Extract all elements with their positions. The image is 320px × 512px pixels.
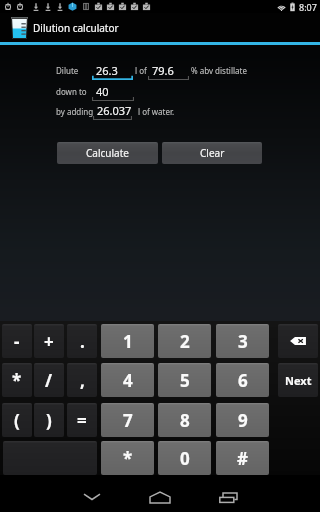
staticText: Next (285, 373, 312, 388)
button[interactable]: 26.037 (93, 103, 132, 120)
staticText: 8 (180, 409, 190, 432)
staticText: 9 (238, 409, 248, 432)
staticText: 8:07 (299, 1, 317, 13)
staticText: 79.6 (152, 63, 174, 78)
staticText: + (44, 330, 54, 353)
staticText: Dilute (56, 65, 79, 76)
staticText: * (12, 369, 22, 392)
staticText: Calculate (86, 146, 129, 160)
button[interactable]: Backspace (278, 324, 318, 358)
button[interactable]: Clear (162, 142, 262, 164)
button[interactable]: - (2, 324, 32, 358)
staticText: , (80, 369, 85, 392)
button[interactable]: Hide keyboard (64, 482, 120, 512)
staticText: 3 (238, 330, 248, 353)
staticText: 4 (123, 369, 133, 392)
staticText: 2 (180, 330, 190, 353)
staticText: l of (135, 65, 147, 76)
button[interactable]: / (34, 363, 64, 397)
button[interactable]: ) (34, 403, 64, 437)
staticText: down to (56, 86, 87, 97)
staticText: 26.3 (96, 63, 118, 78)
button[interactable]: 6 (216, 363, 269, 397)
button[interactable]: Next (278, 363, 318, 397)
staticText: 0 (180, 447, 190, 470)
staticText: by adding (56, 106, 94, 117)
button[interactable]: * (101, 441, 154, 475)
staticText: # (237, 447, 248, 470)
staticText: ( (14, 409, 20, 432)
button[interactable]: 79.6 (148, 63, 189, 80)
button[interactable]: 40 (92, 84, 134, 101)
button[interactable]: 26.3 (92, 63, 133, 80)
button[interactable]: 3 (216, 324, 269, 358)
staticText: 5 (180, 369, 190, 392)
staticText: 26.037 (97, 103, 132, 118)
button[interactable]: # (216, 441, 269, 475)
button[interactable]: 8 (158, 403, 211, 437)
button[interactable]: 4 (101, 363, 154, 397)
button[interactable]: ( (2, 403, 32, 437)
staticText: % abv distillate (191, 65, 247, 76)
staticText: Dilution calculator (33, 21, 119, 35)
button[interactable]: 5 (158, 363, 211, 397)
staticText: 40 (96, 84, 109, 99)
staticText: = (77, 409, 87, 432)
button[interactable]: . (67, 324, 97, 358)
staticText: Clear (200, 146, 225, 160)
staticText: 1 (123, 330, 133, 353)
button[interactable]: 9 (216, 403, 269, 437)
button[interactable]: Calculate (57, 142, 158, 164)
staticText: - (14, 330, 20, 353)
button[interactable]: 0 (158, 441, 211, 475)
button[interactable]: 1 (101, 324, 154, 358)
button[interactable]: , (67, 363, 97, 397)
staticText: / (45, 369, 53, 392)
button[interactable]: 7 (101, 403, 154, 437)
staticText: ) (46, 409, 52, 432)
button[interactable]: Home (132, 482, 188, 512)
staticText: l of water. (138, 106, 175, 117)
button[interactable]: * (2, 363, 32, 397)
button[interactable]: = (67, 403, 97, 437)
staticText: 7 (123, 409, 133, 432)
staticText: 6 (238, 369, 248, 392)
button[interactable]: 2 (158, 324, 211, 358)
button[interactable]: + (34, 324, 64, 358)
button[interactable]: Recent apps (200, 482, 256, 512)
staticText: * (123, 447, 133, 470)
staticText: . (80, 330, 85, 353)
